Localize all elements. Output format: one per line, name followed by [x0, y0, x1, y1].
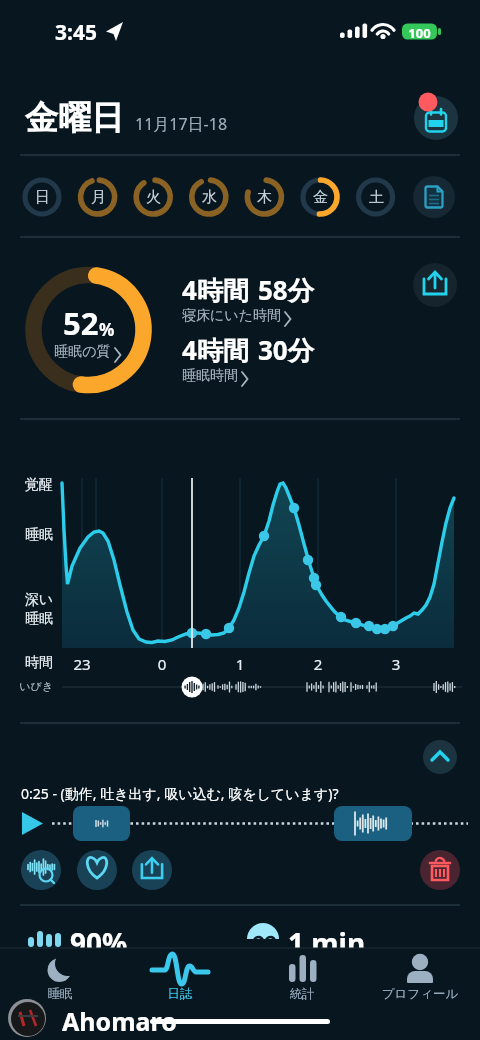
staticText: 3 [376, 654, 416, 674]
button[interactable]: 4時間 [182, 332, 314, 386]
staticText: 金曜日 [25, 97, 124, 139]
button[interactable]: 統計 [247, 952, 357, 1002]
staticText: 睡眠の質 [54, 343, 111, 361]
staticText: % [99, 318, 115, 341]
button[interactable]: 木 [247, 180, 281, 214]
staticText: 4時間 [182, 332, 249, 368]
staticText: プロフィール [365, 986, 475, 1002]
button[interactable]: 土 [359, 180, 393, 214]
staticText: いびき [0, 679, 53, 693]
staticText: 58分 [258, 272, 314, 308]
staticText: 火 [146, 188, 161, 207]
button[interactable]: 52 [38, 302, 139, 362]
staticText: 寝床にいた時間 [182, 307, 281, 325]
staticText: 1 min [288, 924, 366, 962]
staticText: 睡眠 [5, 986, 115, 1002]
staticText: 日誌 [125, 986, 235, 1002]
staticText: 金 [313, 188, 328, 207]
staticText: 11月17日-18 [135, 113, 228, 135]
button[interactable]: 金 [303, 180, 337, 214]
button[interactable]: 睡眠 [5, 952, 115, 1002]
staticText: 1 [220, 654, 260, 674]
button[interactable]: 水 [192, 180, 226, 214]
staticText: 木 [257, 188, 272, 207]
button[interactable]: 火 [136, 180, 170, 214]
staticText: 睡眠 [0, 610, 53, 628]
staticText: 時間 [0, 654, 53, 672]
staticText: Ahomaro [62, 1004, 177, 1038]
staticText: 水 [202, 188, 217, 207]
staticText: 0:25 - (動作, 吐き出す, 吸い込む, 咳をしています)? [21, 784, 339, 803]
staticText: 0 [142, 654, 182, 674]
staticText: 30分 [258, 332, 314, 368]
staticText: 土 [369, 188, 384, 207]
button[interactable]: 月 [81, 180, 115, 214]
button[interactable]: 4時間 [182, 272, 314, 326]
staticText: 90% [70, 924, 128, 962]
staticText: 日 [35, 188, 50, 207]
staticText: 睡眠時間 [182, 367, 238, 385]
staticText: 統計 [247, 986, 357, 1002]
staticText: 覚醒 [0, 476, 53, 494]
staticText: 月 [91, 188, 106, 207]
staticText: 52 [63, 302, 99, 344]
staticText: 2 [298, 654, 338, 674]
staticText: 4時間 [182, 272, 249, 308]
staticText: 100 [402, 24, 437, 42]
button[interactable]: 日誌 [125, 952, 235, 1002]
button[interactable]: プロフィール [365, 952, 475, 1002]
staticText: 3:45 [55, 18, 97, 47]
staticText: 23 [62, 654, 102, 674]
button[interactable]: 日 [25, 180, 59, 214]
staticText: 睡眠 [0, 526, 53, 544]
staticText: 深い [0, 591, 53, 609]
